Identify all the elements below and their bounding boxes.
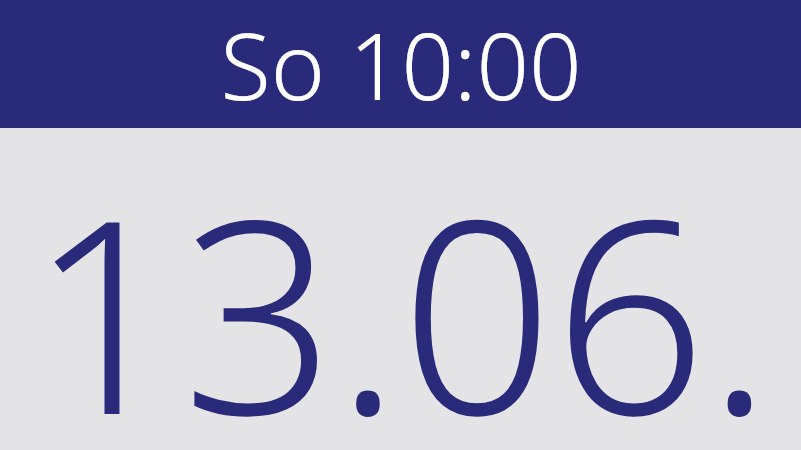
button[interactable]: So 10:00 xyxy=(0,0,801,128)
button[interactable]: 13.06. xyxy=(0,128,801,450)
staticText: So 10:00 xyxy=(220,2,582,127)
staticText: 13.06. xyxy=(29,128,772,450)
